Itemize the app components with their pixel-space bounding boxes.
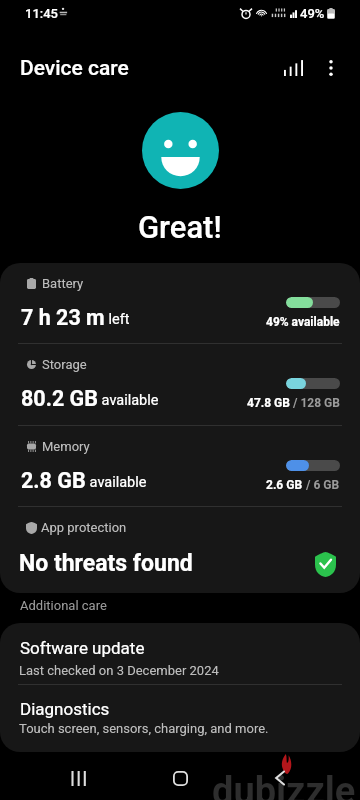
button[interactable]: Battery [0,263,360,343]
staticText: Software update [20,638,145,658]
staticText: Battery [42,276,84,291]
staticText: available [98,392,159,409]
staticText: 80.2 GB [21,386,98,411]
staticText: 47.8 GB [247,396,290,410]
staticText: 49% [300,6,325,21]
staticText: Touch screen, sensors, charging, and mor… [19,721,269,736]
button[interactable]: Back [262,760,298,796]
staticText: Last checked on 3 December 2024 [19,663,219,678]
staticText: 7 h 23 m [21,305,105,330]
button[interactable]: Memory [0,426,360,506]
staticText: 11:45 [25,6,58,21]
staticText: / 6 GB [303,478,340,492]
staticText: Diagnostics [20,699,110,719]
staticText: No threats found [19,550,193,577]
button[interactable]: Home [162,760,198,796]
staticText: 49% available [266,315,340,329]
staticText: left [105,311,130,328]
staticText: Great! [138,209,222,245]
staticText: available [86,474,147,491]
button[interactable]: Recents [60,760,96,796]
staticText: Storage [42,357,87,372]
button[interactable]: More options [312,49,350,87]
staticText: 2.6 GB [266,478,303,492]
button[interactable]: Software update [0,623,360,684]
staticText: dubizzle [212,769,356,800]
button[interactable]: Diagnostics [0,685,360,752]
staticText: App protection [41,520,127,535]
button[interactable]: Storage [0,344,360,425]
staticText: Additional care [20,598,107,613]
button[interactable]: App protection [0,507,360,593]
button[interactable]: Usage statistics [274,49,312,87]
staticText: 2.8 GB [21,468,86,493]
staticText: Device care [20,56,129,81]
staticText: Memory [42,439,90,454]
staticText: / 128 GB [290,396,340,410]
